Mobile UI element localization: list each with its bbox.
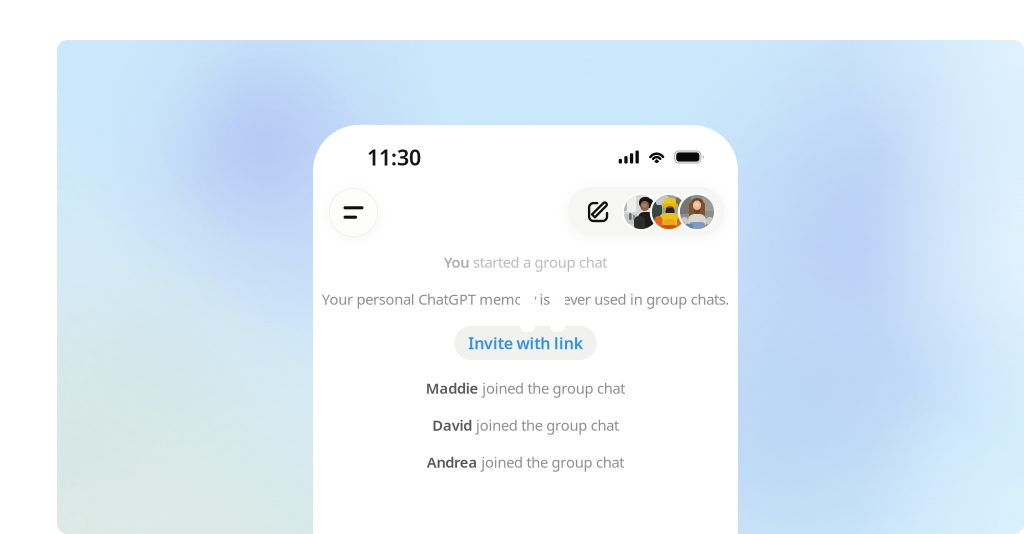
staticText: Your personal ChatGPT memory is never us… [322, 289, 729, 309]
staticText: 11:30 [367, 143, 421, 171]
button[interactable]: Invite with link [454, 326, 597, 360]
staticText: Invite with link [468, 332, 583, 354]
staticText: David [432, 415, 472, 435]
staticText: joined the group chat [477, 452, 624, 472]
staticText: joined the group chat [472, 415, 619, 435]
button[interactable]: Group members [568, 187, 724, 236]
button[interactable]: Sidebar [329, 188, 378, 237]
staticText: started a group chat [469, 252, 607, 272]
staticText: You [444, 252, 469, 272]
staticText: Andrea [427, 452, 478, 472]
staticText: joined the group chat [478, 378, 625, 398]
staticText: Maddie [426, 378, 479, 398]
